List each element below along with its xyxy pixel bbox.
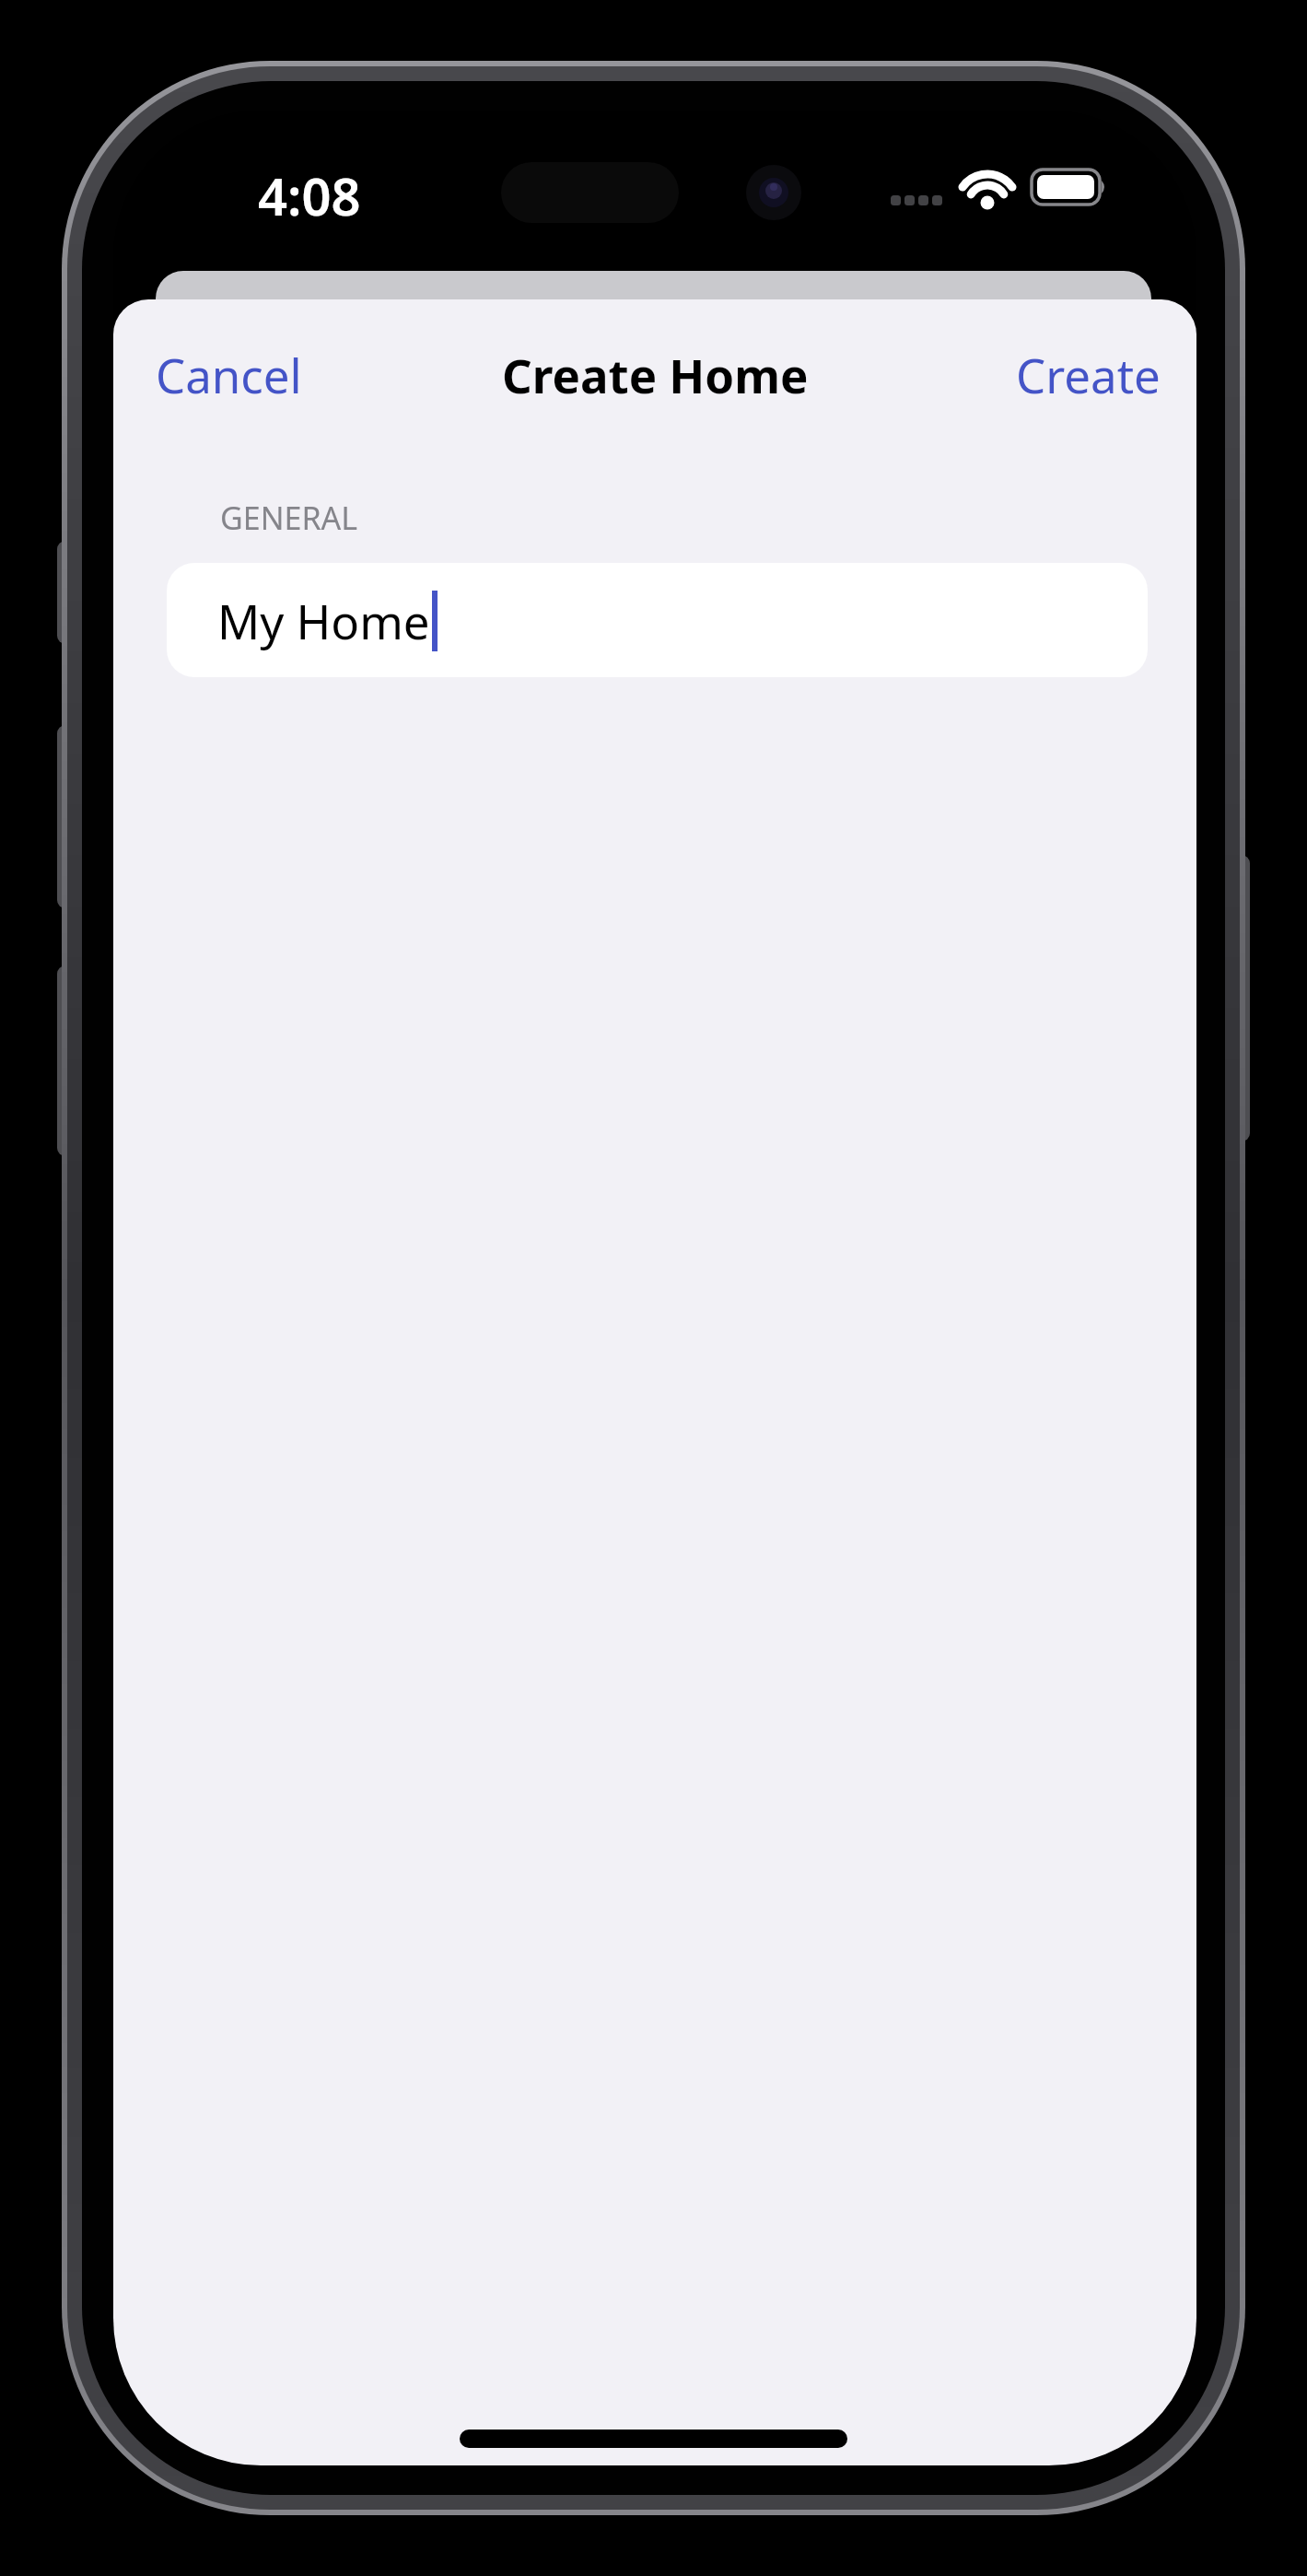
staticText: Cancel (156, 343, 302, 406)
staticText: GENERAL (220, 497, 358, 539)
staticText: 4:08 (258, 160, 361, 230)
button[interactable]: Cancel (141, 342, 317, 406)
button[interactable]: Create (1001, 342, 1175, 406)
staticText: Create (1016, 343, 1161, 406)
staticText: My Home (217, 589, 430, 652)
button[interactable]: My Home (167, 563, 1148, 677)
staticText: Create Home (502, 343, 809, 406)
